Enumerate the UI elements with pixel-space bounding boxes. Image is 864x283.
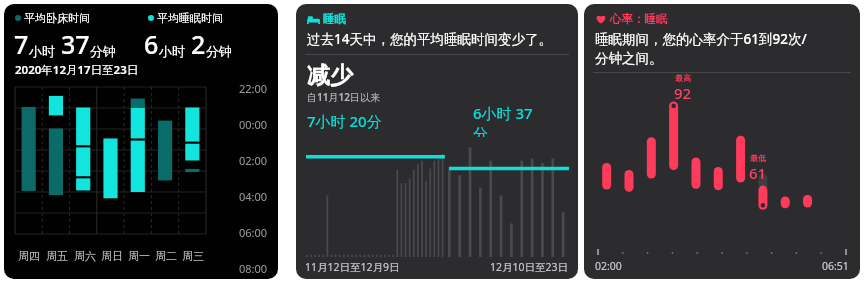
staticText: 最低 (750, 153, 766, 163)
staticText: 周三 (182, 249, 204, 263)
staticText: 平均卧床时间 (24, 11, 90, 25)
staticText: 08:00 (239, 261, 268, 276)
other: 心率 (595, 13, 607, 25)
staticText: 02:00 (239, 153, 268, 168)
staticText: 04:00 (239, 189, 268, 204)
staticText: 06:51 (822, 259, 849, 273)
staticText: 12月10日至23日 (490, 260, 569, 274)
staticText: 2 (191, 27, 206, 61)
staticText: 平均睡眠时间 (157, 11, 223, 25)
staticText: 6小时 37分 (473, 103, 543, 137)
staticText: 睡眠期间，您的心率介于61到92次/ 分钟之间。 (595, 30, 807, 67)
staticText: 过去14天中，您的平均睡眠时间变少了。 (307, 30, 552, 48)
staticText: 周二 (155, 249, 177, 263)
staticText: 减少 (307, 61, 353, 90)
staticText: 周日 (101, 249, 123, 263)
staticText: 2020年12月17日至23日 (15, 62, 139, 78)
staticText: 最高 (675, 73, 691, 83)
staticText: 00:00 (239, 117, 268, 132)
staticText: 61 (749, 163, 767, 183)
staticText: 7小时 20分 (307, 111, 382, 131)
staticText: 分钟 (206, 43, 232, 59)
button[interactable]: 睡眠 (296, 4, 578, 279)
staticText: 周五 (46, 249, 68, 263)
button[interactable]: 心率 (584, 4, 860, 279)
staticText: 周一 (128, 249, 150, 263)
staticText: 心率：睡眠 (610, 12, 668, 26)
staticText: 小时 (29, 43, 55, 59)
staticText: 自11月12日以来 (307, 90, 380, 104)
staticText: 22:00 (239, 81, 268, 96)
staticText: 11月12日至12月9日 (305, 260, 400, 274)
button[interactable]: 平均卧床时间 (4, 4, 278, 279)
staticText: 02:00 (595, 259, 622, 273)
staticText: 睡眠 (323, 12, 346, 26)
staticText: 7 (14, 27, 29, 61)
staticText: 6 (144, 27, 159, 61)
staticText: 06:00 (239, 225, 268, 240)
staticText: 小时 (159, 43, 185, 59)
staticText: 37 (61, 27, 90, 61)
staticText: 分钟 (90, 43, 116, 59)
staticText: 周六 (74, 249, 96, 263)
staticText: 92 (674, 83, 692, 103)
staticText: 周四 (18, 249, 40, 263)
other: 睡眠 (307, 15, 320, 24)
